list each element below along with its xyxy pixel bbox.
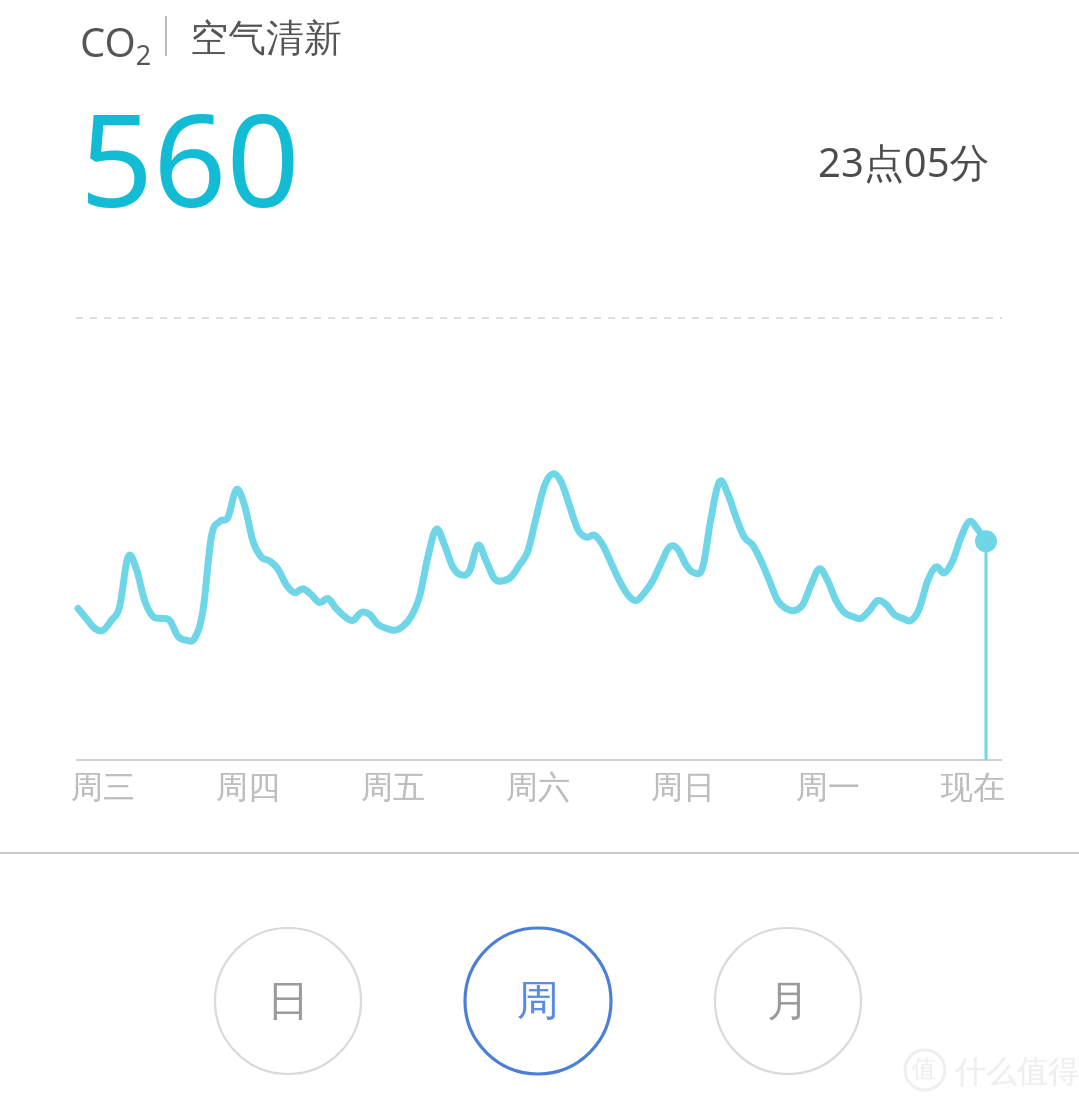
button[interactable]: 月 [714, 927, 862, 1075]
button[interactable]: 日 [214, 927, 362, 1075]
button[interactable]: 周 [464, 927, 612, 1075]
